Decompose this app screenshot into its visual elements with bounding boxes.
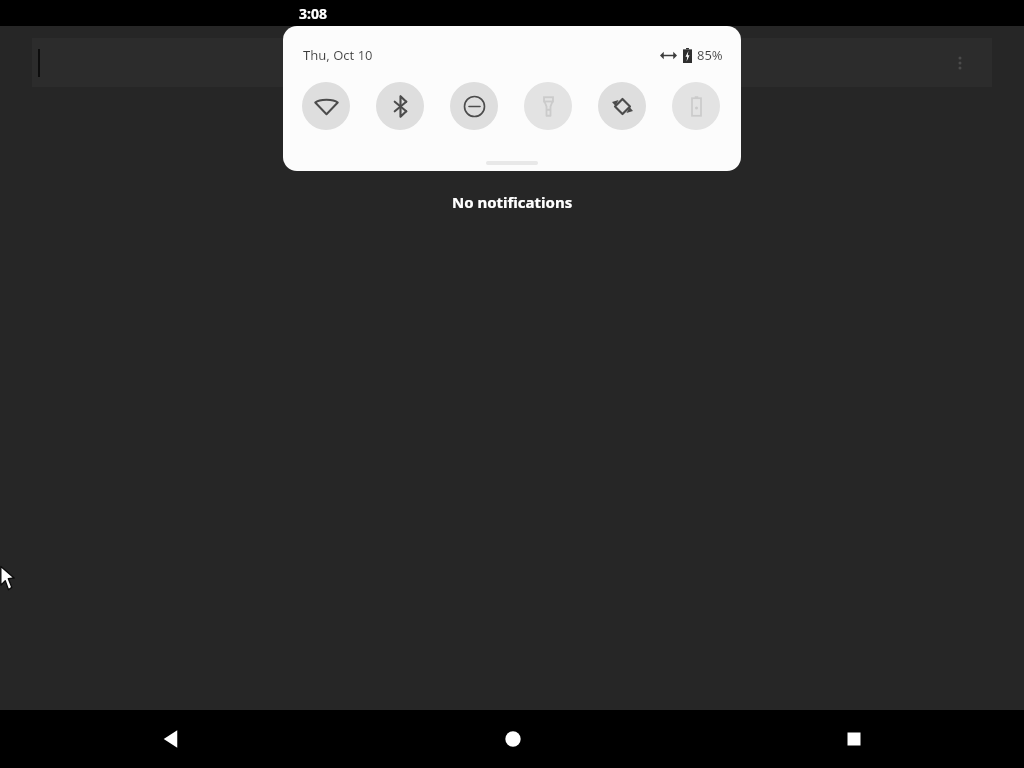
- staticText: 3:08: [299, 4, 327, 23]
- staticText: 85%: [697, 46, 723, 64]
- button[interactable]: Do Not Disturb: [450, 82, 498, 130]
- button[interactable]: Battery Saver: [672, 82, 720, 130]
- button[interactable]: More options: [32, 38, 992, 87]
- button[interactable]: Flashlight: [524, 82, 572, 130]
- button[interactable]: Auto rotate: [598, 82, 646, 130]
- staticText: Thu, Oct 10: [303, 46, 373, 64]
- button[interactable]: Bluetooth: [376, 82, 424, 130]
- staticText: No notifications: [452, 192, 573, 212]
- button[interactable]: Home: [342, 710, 683, 768]
- button[interactable]: Recent apps: [683, 710, 1024, 768]
- button[interactable]: Back: [0, 710, 342, 768]
- button[interactable]: Wi-Fi: [302, 82, 350, 130]
